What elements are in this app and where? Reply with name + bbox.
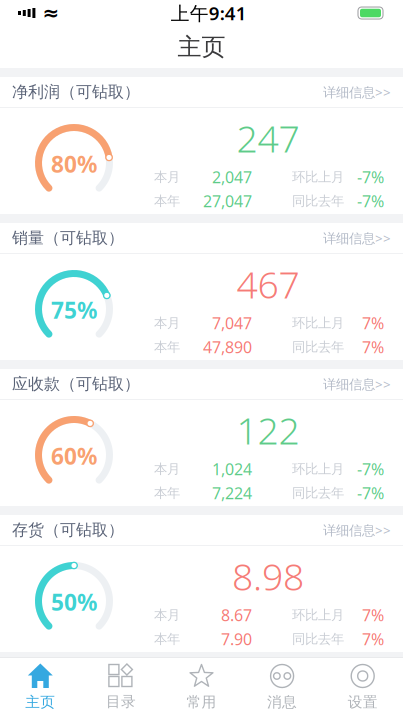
button[interactable]: 净利润（可钻取） — [0, 77, 403, 107]
staticText: 应收款（可钻取） — [12, 374, 140, 394]
staticText: 80% — [51, 149, 97, 179]
staticText: -7% — [357, 482, 384, 504]
staticText: 设置 — [348, 693, 378, 711]
staticText: 本月 — [154, 607, 180, 623]
staticText: 同比去年 — [292, 339, 344, 355]
staticText: 8.67 — [221, 604, 252, 626]
staticText: 详细信息>> — [323, 375, 391, 393]
staticText: 7,047 — [212, 312, 252, 334]
button[interactable]: 应收款（可钻取） — [0, 369, 403, 399]
staticText: -7% — [357, 190, 384, 212]
staticText: 本年 — [154, 339, 180, 355]
staticText: 2,047 — [212, 166, 252, 188]
staticText: 常用 — [186, 693, 216, 711]
staticText: -7% — [357, 458, 384, 480]
button[interactable]: 消息 — [242, 658, 322, 716]
staticText: 50% — [51, 587, 97, 617]
staticText: 净利润（可钻取） — [12, 82, 140, 102]
staticText: 目录 — [106, 692, 136, 710]
staticText: 环比上月 — [292, 607, 344, 623]
staticText: -7% — [357, 166, 384, 188]
button[interactable]: 常用 — [161, 658, 242, 716]
staticText: 同比去年 — [292, 631, 344, 647]
staticText: 60% — [51, 441, 97, 471]
button[interactable]: 主页 — [0, 658, 81, 716]
staticText: 存货（可钻取） — [12, 520, 124, 540]
staticText: 7% — [362, 336, 384, 358]
staticText: 247 — [236, 113, 299, 163]
staticText: 7% — [362, 312, 384, 334]
staticText: 本月 — [154, 315, 180, 331]
button[interactable]: 目录 — [81, 658, 161, 716]
staticText: 本年 — [154, 631, 180, 647]
staticText: 同比去年 — [292, 193, 344, 209]
staticText: 467 — [236, 259, 299, 309]
staticText: 本月 — [154, 169, 180, 185]
staticText: 47,890 — [203, 336, 252, 358]
button[interactable]: 存货（可钻取） — [0, 515, 403, 545]
staticText: ≈ — [42, 2, 59, 24]
button[interactable]: 设置 — [322, 658, 403, 716]
staticText: 7% — [362, 628, 384, 650]
staticText: 75% — [51, 295, 97, 325]
staticText: 122 — [236, 405, 299, 455]
staticText: 详细信息>> — [323, 521, 391, 539]
staticText: 1,024 — [212, 458, 252, 480]
staticText: 上午9:41 — [171, 1, 247, 25]
staticText: 环比上月 — [292, 315, 344, 331]
staticText: 销量（可钻取） — [12, 228, 124, 248]
staticText: 消息 — [267, 693, 297, 711]
staticText: 8.98 — [232, 551, 304, 601]
staticText: 详细信息>> — [323, 229, 391, 247]
staticText: 主页 — [25, 693, 55, 711]
staticText: 环比上月 — [292, 169, 344, 185]
staticText: 同比去年 — [292, 485, 344, 501]
staticText: 7% — [362, 604, 384, 626]
staticText: 27,047 — [203, 190, 252, 212]
staticText: 环比上月 — [292, 461, 344, 477]
staticText: 7,224 — [212, 482, 252, 504]
staticText: 本年 — [154, 193, 180, 209]
staticText: 主页 — [177, 32, 225, 62]
staticText: 详细信息>> — [323, 83, 391, 101]
staticText: 本月 — [154, 461, 180, 477]
staticText: 本年 — [154, 485, 180, 501]
button[interactable]: 销量（可钻取） — [0, 223, 403, 253]
staticText: 7.90 — [221, 628, 252, 650]
